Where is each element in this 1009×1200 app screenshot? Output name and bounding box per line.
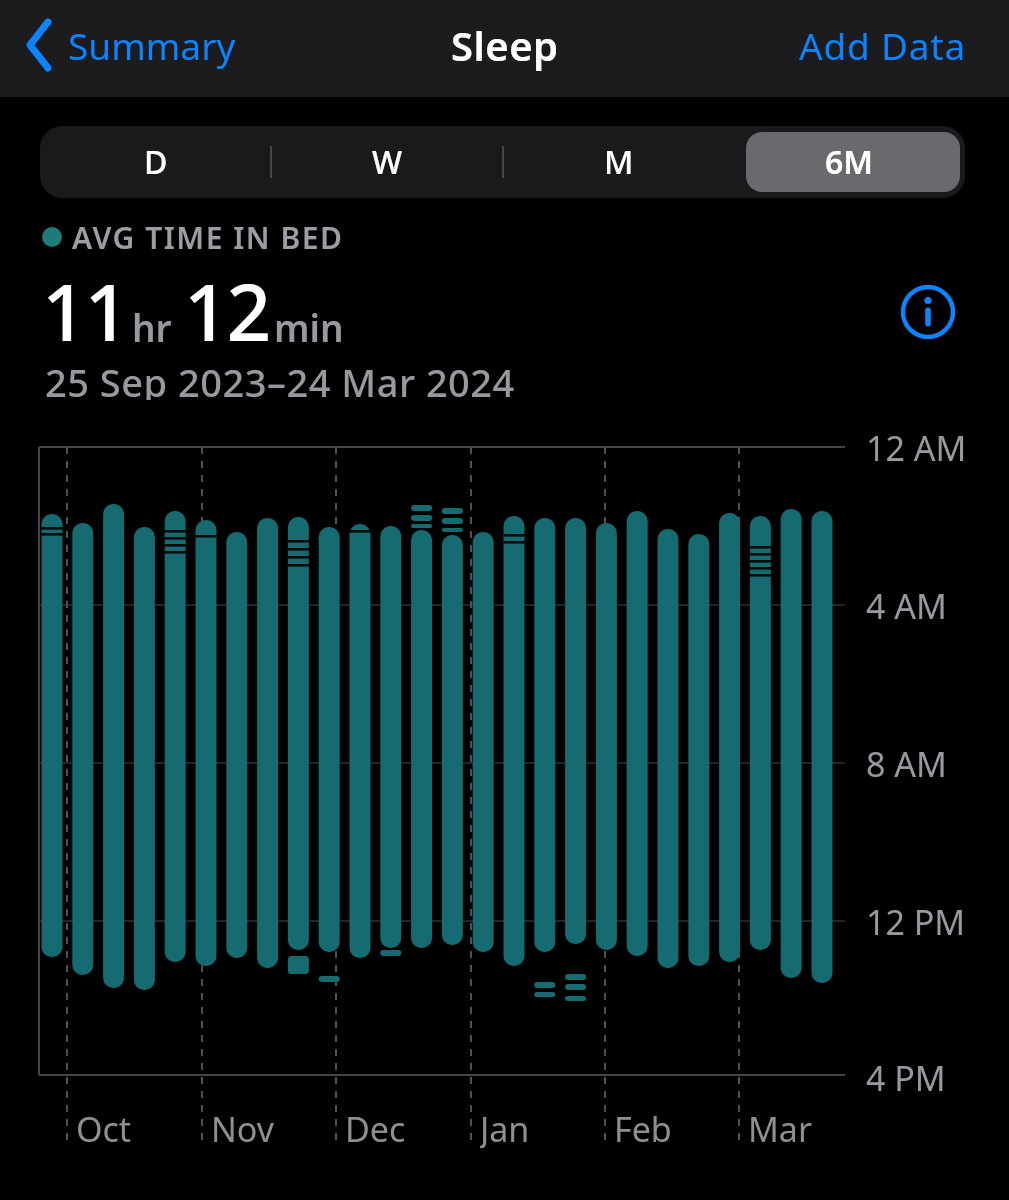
staticText: Summary	[68, 20, 236, 70]
staticText: Mar	[748, 1106, 812, 1148]
staticText: Sleep	[451, 18, 559, 72]
staticText: D	[144, 140, 168, 184]
button[interactable]: Summary	[26, 19, 236, 71]
button[interactable]: W	[272, 126, 503, 198]
staticText: Jan	[480, 1106, 530, 1148]
staticText: Dec	[345, 1106, 406, 1148]
button[interactable]: D	[40, 126, 272, 198]
staticText: AVG TIME IN BED	[72, 217, 344, 257]
staticText: 8 AM	[866, 741, 947, 785]
staticText: 4 PM	[866, 1055, 946, 1099]
button[interactable]: Add Data	[799, 20, 967, 70]
staticText: min	[274, 302, 344, 352]
button[interactable]	[898, 282, 958, 342]
staticText: Oct	[76, 1106, 132, 1148]
staticText: Nov	[211, 1106, 275, 1148]
staticText: 4 AM	[866, 583, 947, 627]
staticText: 25 Sep 2023–24 Mar 2024	[45, 356, 515, 400]
staticText: 12	[184, 258, 270, 364]
staticText: 11	[42, 258, 128, 364]
button[interactable]: 6M	[734, 126, 965, 198]
button[interactable]: M	[503, 126, 734, 198]
staticText: 6M	[825, 140, 874, 184]
staticText: M	[604, 140, 634, 184]
staticText: hr	[132, 302, 172, 352]
staticText: W	[372, 140, 403, 184]
staticText: Add Data	[799, 20, 967, 70]
staticText: Feb	[614, 1106, 672, 1148]
staticText: 12 PM	[866, 899, 966, 943]
staticText: 12 AM	[866, 425, 967, 469]
